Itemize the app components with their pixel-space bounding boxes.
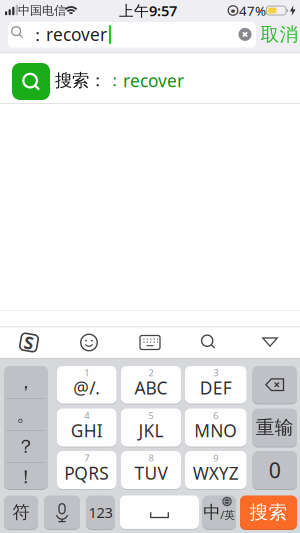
button[interactable]: 搜索： [0, 53, 300, 103]
staticText: 9 [213, 452, 218, 464]
staticText: 0 [269, 456, 281, 484]
staticText: ：recover [29, 23, 107, 46]
staticText: recover [123, 69, 184, 92]
staticText: JKL [138, 419, 163, 442]
staticText: /英 [220, 508, 235, 522]
button[interactable]: Space [120, 495, 199, 529]
staticText: 中 [203, 502, 220, 523]
staticText: ？ [16, 435, 35, 458]
button[interactable]: ， [4, 366, 48, 397]
staticText: ABC [134, 376, 167, 399]
staticText: 4 [84, 409, 89, 422]
staticText: 上午9:57 [119, 1, 177, 20]
staticText: S [24, 331, 34, 354]
button[interactable]: 0 [252, 451, 297, 489]
staticText: GHI [71, 419, 103, 442]
button[interactable]: 123 [86, 495, 115, 529]
button[interactable]: ？ [4, 431, 48, 462]
staticText: 中国电信 [18, 3, 66, 18]
button[interactable]: Sogou input menu [17, 330, 41, 354]
staticText: MNO [194, 419, 237, 442]
staticText: 3 [213, 367, 218, 379]
staticText: 。 [16, 403, 35, 426]
button[interactable]: 符 [4, 495, 38, 529]
button[interactable]: ：recover [8, 22, 256, 47]
button[interactable]: 搜索 [240, 495, 297, 529]
staticText: 1 [84, 367, 89, 379]
button[interactable]: 8 [121, 451, 181, 489]
button[interactable]: Chinese / English [202, 495, 236, 529]
staticText: DEF [200, 376, 232, 399]
button[interactable]: 4 [57, 408, 116, 446]
staticText: ， [16, 370, 35, 393]
button[interactable]: 3 [185, 366, 246, 403]
button[interactable]: 9 [185, 451, 246, 489]
staticText: 5 [148, 409, 153, 422]
staticText: 2 [148, 367, 153, 379]
button[interactable]: Dismiss keyboard [258, 330, 282, 354]
button[interactable]: 。 [4, 399, 48, 430]
staticText: 取消 [260, 23, 298, 46]
button[interactable]: 7 [57, 451, 116, 489]
button[interactable]: 取消 [259, 22, 299, 48]
staticText: 搜索 [249, 501, 287, 524]
staticText: 6 [213, 409, 218, 422]
button[interactable]: Keyboard layout [138, 330, 162, 354]
button[interactable]: Emoji [77, 330, 101, 354]
button[interactable]: 1 [57, 366, 116, 403]
button[interactable]: Voice input [44, 495, 80, 529]
button[interactable]: 重输 [252, 408, 297, 446]
button[interactable]: 6 [185, 408, 246, 446]
staticText: 47% [239, 2, 266, 19]
staticText: 重输 [256, 416, 294, 439]
staticText: ！ [16, 465, 35, 488]
staticText: 123 [88, 502, 112, 522]
button[interactable]: ！ [4, 461, 48, 492]
staticText: @/. [73, 376, 100, 399]
button[interactable]: 2 [121, 366, 181, 403]
staticText: 搜索： [55, 70, 106, 91]
button[interactable]: Delete [252, 366, 297, 403]
staticText: ： [106, 70, 123, 91]
staticText: 8 [148, 452, 153, 464]
button[interactable]: Search within input [197, 330, 221, 354]
staticText: TUV [134, 461, 167, 484]
staticText: 7 [84, 452, 89, 464]
staticText: 符 [12, 502, 29, 523]
button[interactable]: Clear text [238, 28, 251, 41]
staticText: PQRS [64, 461, 109, 484]
staticText: WXYZ [193, 461, 239, 484]
button[interactable]: 5 [121, 408, 181, 446]
